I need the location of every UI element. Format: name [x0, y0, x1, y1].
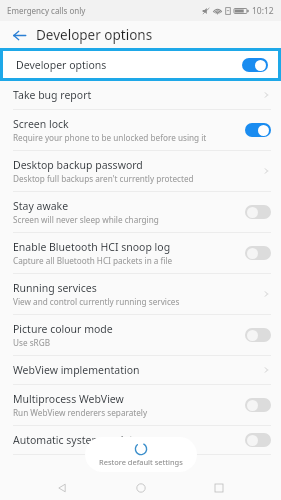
staticText: Take bug report — [13, 88, 92, 102]
button[interactable]: Developer options — [3, 51, 278, 78]
staticText: Running services — [13, 281, 97, 295]
staticText: Use sRGB — [13, 337, 50, 348]
button[interactable]: Running services — [0, 274, 281, 314]
staticText: Emergency calls only — [7, 5, 86, 16]
button[interactable]: Take bug report — [0, 81, 281, 109]
button[interactable]: WebView implementation — [0, 356, 281, 384]
staticText: WebView implementation — [13, 363, 140, 377]
button[interactable]: On — [245, 123, 271, 137]
staticText: Restore default settings — [99, 457, 183, 467]
button[interactable]: Back — [8, 24, 30, 46]
button[interactable]: Enable Bluetooth HCI snoop log — [0, 233, 281, 273]
staticText: Desktop full backups aren't currently pr… — [13, 173, 194, 184]
button[interactable]: Desktop backup password — [0, 151, 281, 191]
button[interactable]: On — [242, 58, 268, 72]
button[interactable]: Home — [124, 476, 158, 500]
button[interactable]: Stay awake — [0, 192, 281, 232]
staticText: 10:12 — [252, 5, 274, 17]
button[interactable]: Off — [245, 328, 271, 342]
staticText: Automatic system updates — [13, 433, 145, 447]
staticText: Enable Bluetooth HCI snoop log — [13, 240, 171, 254]
button[interactable]: Off — [245, 246, 271, 260]
button[interactable]: Screen lock — [0, 110, 281, 150]
staticText: Screen lock — [13, 117, 69, 131]
button[interactable]: Off — [245, 398, 271, 412]
staticText: Require your phone to be unlocked before… — [13, 132, 207, 143]
button[interactable]: Automatic system updates — [0, 426, 281, 454]
staticText: Stay awake — [13, 199, 69, 213]
staticText: Screen will never sleep while charging — [13, 214, 159, 225]
staticText: View and control currently running servi… — [13, 296, 180, 307]
button[interactable]: Off — [245, 433, 271, 447]
button[interactable]: Off — [245, 205, 271, 219]
staticText: Picture colour mode — [13, 322, 113, 336]
staticText: Multiprocess WebView — [13, 392, 124, 406]
button[interactable]: Back — [45, 476, 79, 500]
staticText: Developer options — [36, 26, 153, 44]
staticText: Desktop backup password — [13, 158, 143, 172]
button[interactable]: Picture colour mode — [0, 315, 281, 355]
staticText: Capture all Bluetooth HCI packets in a f… — [13, 255, 173, 266]
button[interactable]: Multiprocess WebView — [0, 385, 281, 425]
button[interactable]: Recents — [202, 476, 236, 500]
staticText: Run WebView renderers separately — [13, 407, 148, 418]
staticText: Developer options — [16, 58, 107, 72]
